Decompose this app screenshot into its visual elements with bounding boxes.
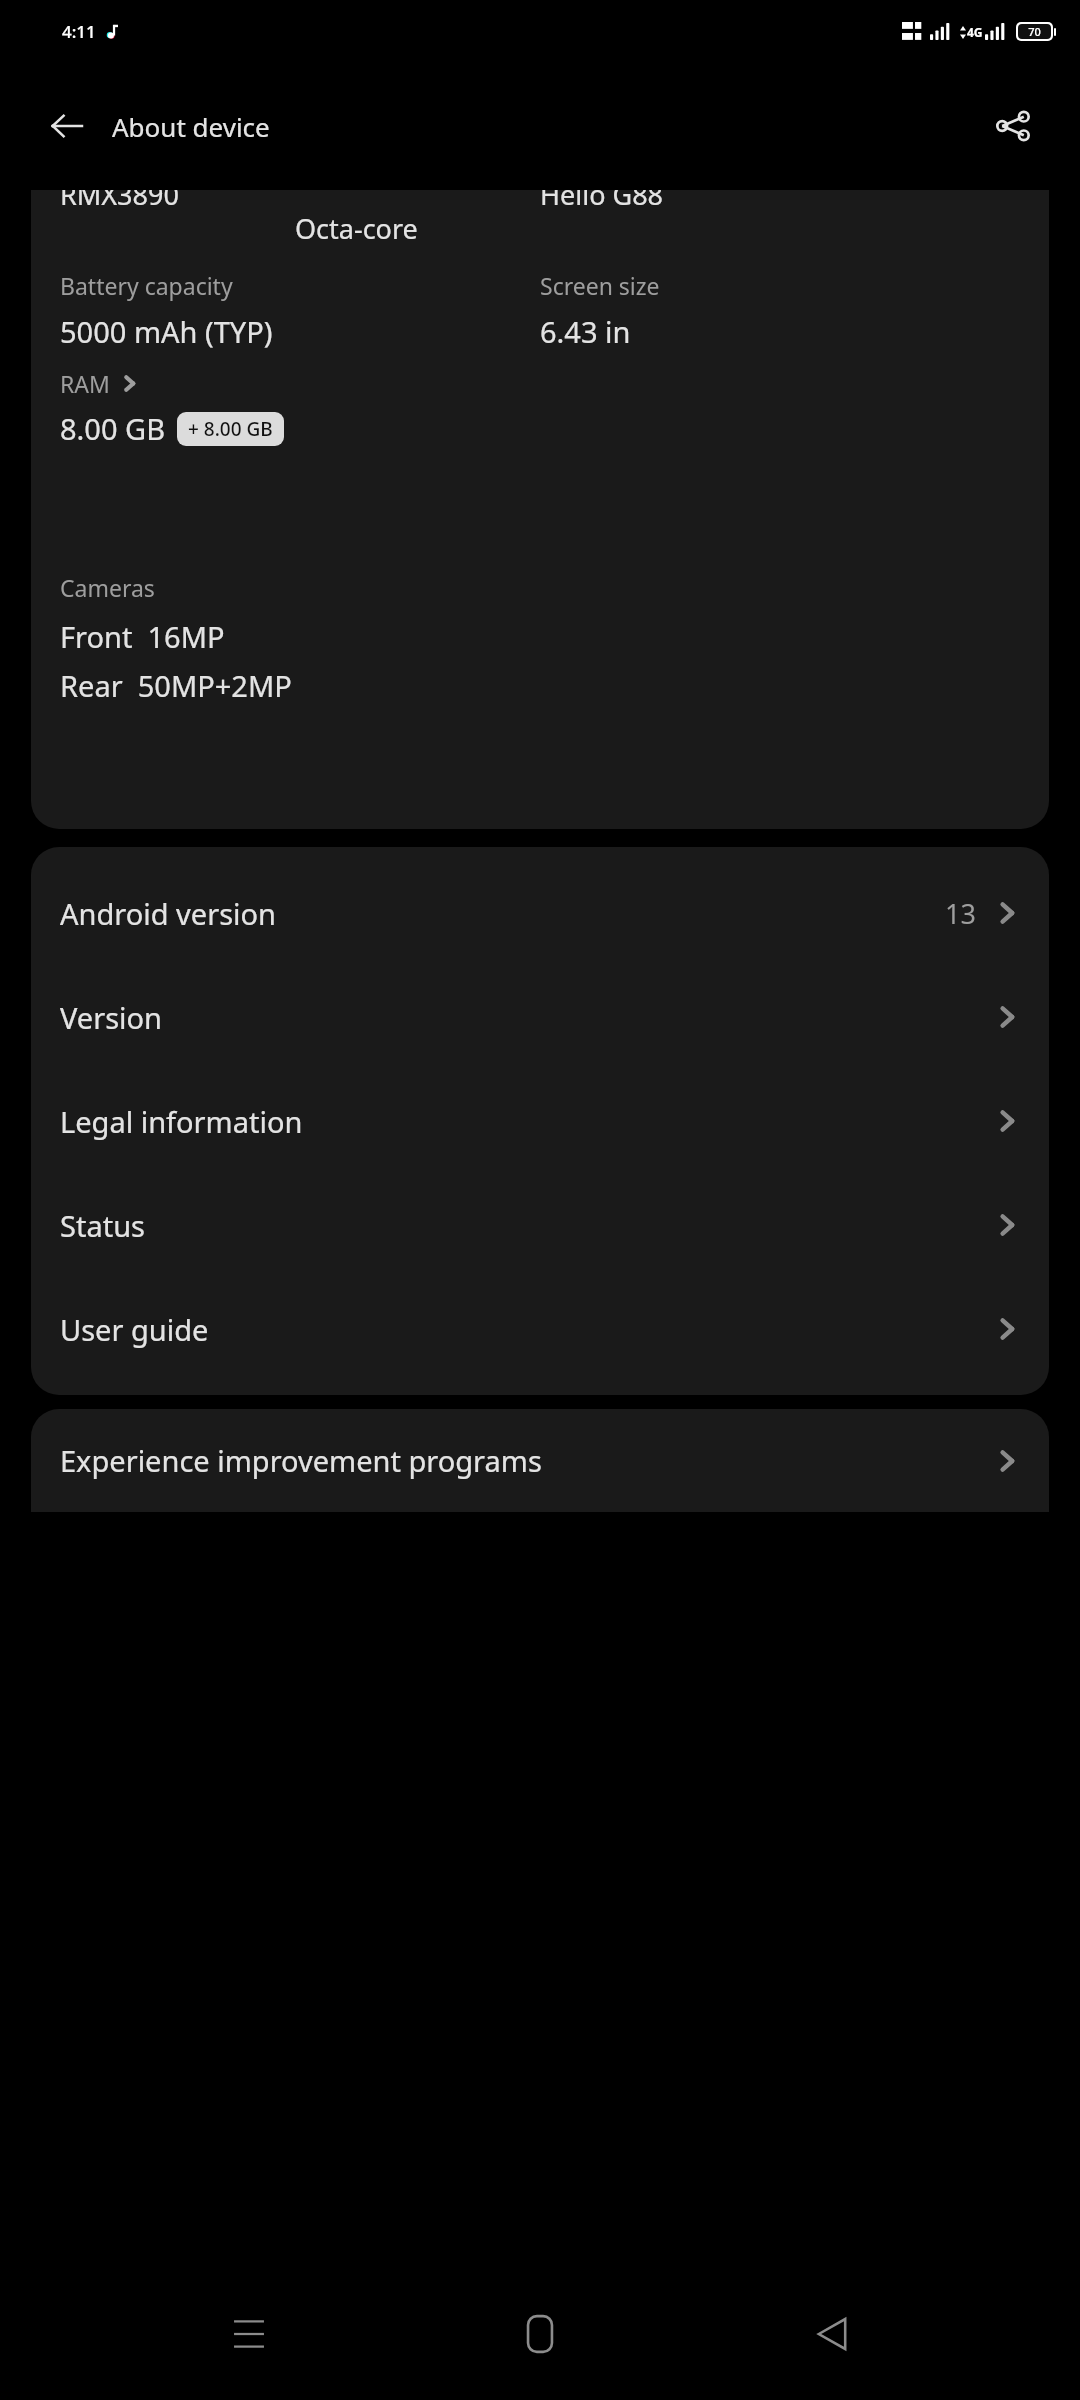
button[interactable]: Android version (31, 861, 1049, 965)
staticText: User guide (60, 1310, 994, 1349)
staticText: About device (112, 109, 270, 144)
staticText: 4G (967, 24, 983, 40)
button[interactable]: Experience improvement programs (31, 1423, 1049, 1498)
staticText: Screen size (540, 270, 660, 301)
button[interactable]: Share (984, 97, 1042, 155)
staticText: 6.43 in (540, 312, 631, 351)
staticText: Experience improvement programs (60, 1441, 994, 1480)
staticText: 4:11 (62, 20, 96, 43)
button[interactable]: Legal information (31, 1069, 1049, 1173)
staticText: RAM (60, 368, 110, 399)
staticText: Status (60, 1206, 994, 1245)
staticText: Rear 50MP+2MP (60, 666, 292, 705)
staticText: Helio G88 (540, 190, 664, 213)
staticText: Legal information (60, 1102, 994, 1141)
button[interactable]: Back (38, 97, 96, 155)
button[interactable]: Home (497, 2291, 583, 2377)
staticText: 5000 mAh (TYP) (60, 312, 273, 351)
staticText: 8.00 GB (60, 409, 166, 448)
staticText: Octa-core (295, 210, 418, 247)
button[interactable]: Version (31, 965, 1049, 1069)
button[interactable]: RAM (60, 368, 1020, 448)
staticText: Battery capacity (60, 270, 233, 301)
button[interactable]: User guide (31, 1277, 1049, 1381)
staticText: Cameras (60, 572, 155, 603)
staticText: Android version (60, 894, 945, 933)
staticText: Front 16MP (60, 617, 225, 656)
staticText: RMX3890 (60, 190, 179, 213)
staticText: Version (60, 998, 994, 1037)
staticText: 13 (945, 895, 976, 932)
staticText: + 8.00 GB (188, 416, 273, 442)
button[interactable]: Back (789, 2291, 875, 2377)
staticText: 70 (1028, 24, 1041, 39)
button[interactable]: Recent apps (206, 2291, 292, 2377)
button[interactable]: Status (31, 1173, 1049, 1277)
